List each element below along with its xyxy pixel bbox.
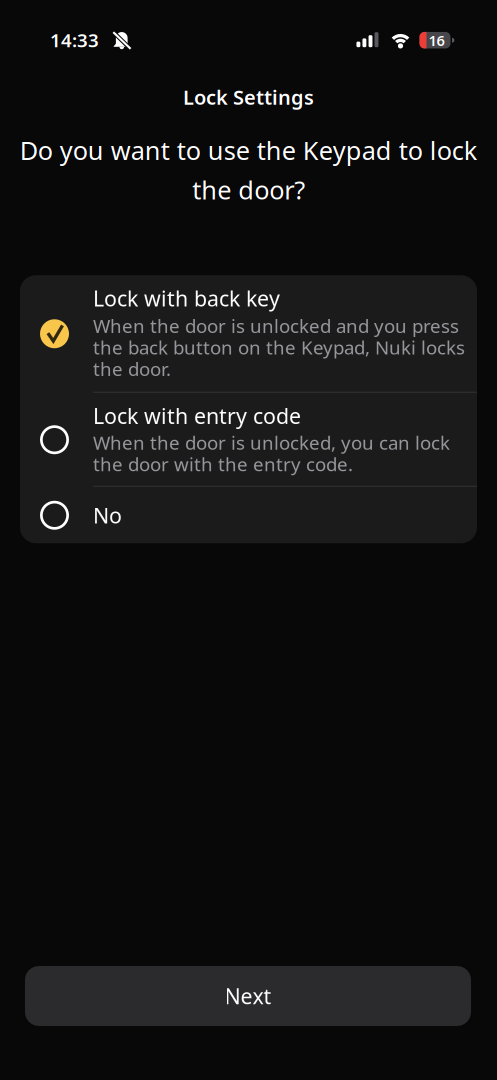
staticText: Next — [224, 982, 271, 1010]
staticText: Do you want to use the Keypad to lock th… — [19, 133, 477, 207]
staticText: Lock with back key — [93, 284, 280, 312]
staticText: 14:33 — [50, 28, 99, 52]
button[interactable]: Lock with entry code — [20, 393, 477, 486]
button[interactable]: Lock with back key — [20, 275, 477, 392]
staticText: 16 — [428, 30, 444, 50]
staticText: When the door is unlocked, you can lock … — [93, 430, 450, 476]
staticText: Lock with entry code — [93, 402, 301, 430]
button[interactable]: No — [20, 487, 477, 543]
staticText: When the door is unlocked and you press … — [93, 313, 465, 381]
button[interactable]: Next — [25, 966, 471, 1026]
staticText: No — [93, 501, 122, 529]
staticText: Lock Settings — [183, 84, 314, 110]
